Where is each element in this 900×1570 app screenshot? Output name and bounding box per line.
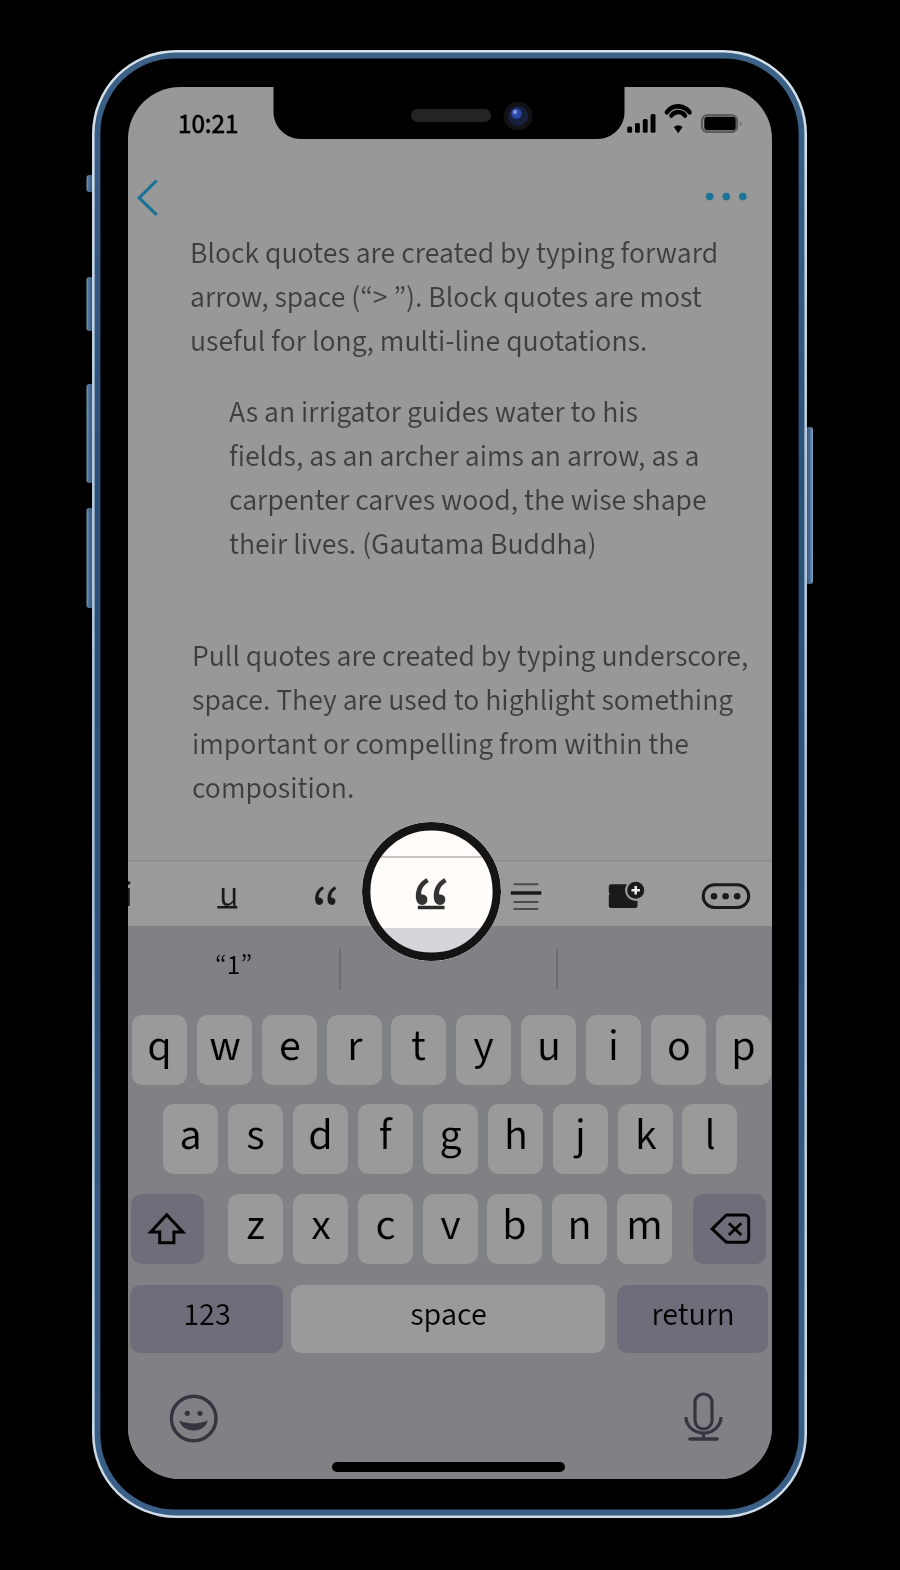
staticText: m — [626, 1194, 663, 1257]
button[interactable]: w — [197, 1015, 252, 1085]
staticText: b — [502, 1194, 527, 1257]
button[interactable]: Dictate — [673, 1387, 733, 1447]
button[interactable]: return — [617, 1285, 768, 1353]
button[interactable]: Back — [128, 167, 190, 229]
button[interactable]: y — [456, 1015, 511, 1085]
button[interactable]: x — [293, 1194, 348, 1264]
staticText: i — [608, 1015, 619, 1078]
staticText: Block quotes are created by typing forwa… — [190, 233, 772, 363]
staticText: r — [347, 1015, 363, 1078]
button[interactable]: r — [327, 1015, 382, 1085]
button[interactable]: j — [553, 1104, 608, 1174]
button[interactable]: z — [228, 1194, 283, 1264]
staticText: u — [537, 1015, 561, 1078]
staticText: g — [439, 1104, 462, 1167]
staticText: j — [575, 1104, 586, 1167]
button[interactable]: h — [488, 1104, 543, 1174]
staticText: “ — [410, 846, 454, 908]
staticText: “ — [311, 864, 341, 932]
staticText: 10:21 — [178, 105, 239, 143]
staticText: z — [246, 1194, 265, 1257]
staticText: w — [209, 1015, 241, 1078]
button[interactable]: e — [262, 1015, 317, 1085]
staticText: e — [279, 1015, 301, 1078]
button[interactable]: a — [163, 1104, 218, 1174]
button[interactable]: p — [716, 1015, 771, 1085]
button[interactable]: i — [586, 1015, 641, 1085]
staticText: q — [147, 1015, 172, 1078]
staticText: t — [411, 1015, 426, 1078]
staticText: s — [246, 1104, 265, 1167]
staticText: space — [410, 1292, 487, 1338]
button[interactable]: space — [291, 1285, 605, 1353]
staticText: As an irrigator guides water to his fiel… — [229, 392, 708, 566]
button[interactable]: s — [228, 1104, 283, 1174]
button[interactable]: u — [521, 1015, 576, 1085]
button[interactable]: Emoji — [164, 1388, 224, 1448]
button[interactable]: t — [391, 1015, 446, 1085]
staticText: “1” — [215, 946, 253, 985]
button[interactable]: “1” — [128, 926, 340, 997]
button[interactable]: f — [358, 1104, 413, 1174]
button[interactable]: g — [423, 1104, 478, 1174]
staticText: c — [375, 1194, 396, 1257]
staticText: i — [128, 869, 133, 920]
staticText: o — [667, 1015, 691, 1078]
staticText: v — [440, 1194, 461, 1257]
button[interactable]: Underline — [195, 859, 263, 927]
button[interactable]: m — [617, 1194, 672, 1264]
button[interactable]: q — [132, 1015, 187, 1085]
button[interactable]: More options — [690, 173, 760, 221]
button[interactable]: o — [651, 1015, 706, 1085]
staticText: 123 — [183, 1292, 231, 1338]
button[interactable]: Italic — [128, 859, 162, 927]
button[interactable]: New folder — [590, 859, 658, 927]
staticText: p — [731, 1015, 756, 1078]
button[interactable]: 123 — [130, 1285, 283, 1353]
button[interactable]: b — [487, 1194, 542, 1264]
button[interactable]: Quote — [292, 859, 360, 927]
button[interactable]: Block quote — [362, 822, 501, 961]
button[interactable]: More — [692, 859, 760, 927]
button[interactable]: c — [358, 1194, 413, 1264]
button[interactable]: Backspace — [693, 1194, 766, 1264]
staticText: y — [473, 1015, 494, 1078]
button[interactable]: Shift — [131, 1194, 204, 1264]
staticText: f — [379, 1104, 392, 1167]
button[interactable]: v — [423, 1194, 478, 1264]
staticText: d — [308, 1104, 333, 1167]
staticText: a — [179, 1104, 202, 1167]
staticText: u — [219, 869, 239, 920]
staticText: x — [311, 1194, 331, 1257]
button[interactable]: l — [682, 1104, 737, 1174]
button[interactable]: k — [618, 1104, 673, 1174]
staticText: h — [504, 1104, 528, 1167]
staticText: Pull quotes are created by typing unders… — [192, 636, 772, 810]
button[interactable]: Align — [492, 859, 560, 927]
button[interactable]: d — [293, 1104, 348, 1174]
staticText: k — [635, 1104, 657, 1167]
staticText: n — [567, 1194, 592, 1257]
button[interactable]: n — [552, 1194, 607, 1264]
staticText: l — [704, 1104, 716, 1167]
staticText: return — [651, 1292, 735, 1338]
